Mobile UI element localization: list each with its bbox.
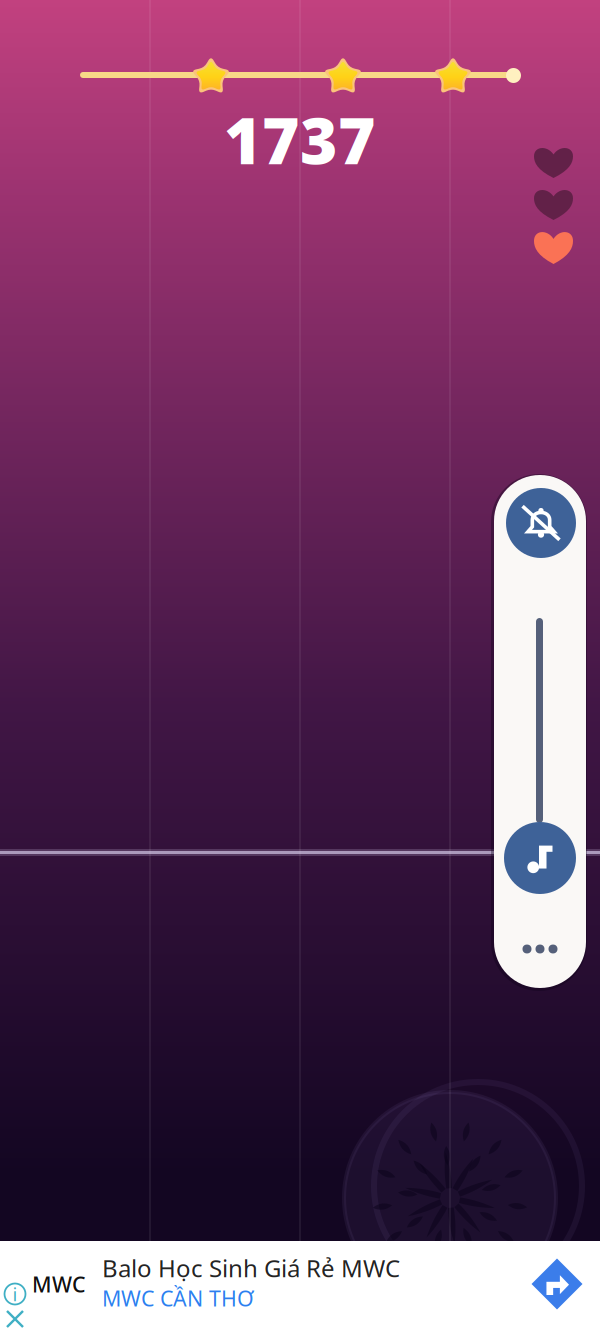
button[interactable]: Mute <box>506 488 576 558</box>
button[interactable]: MWC <box>30 1241 500 1333</box>
button[interactable]: Lane 1 <box>0 0 150 1241</box>
button[interactable]: Music volume <box>504 822 576 894</box>
staticText: 1737 <box>224 97 376 182</box>
staticText: Balo Học Sinh Giá Rẻ MWC <box>102 1252 400 1284</box>
button[interactable]: Lane 3 <box>300 0 450 1241</box>
button[interactable]: Lane 4 <box>450 0 600 1241</box>
button[interactable]: Open advertisement <box>517 1244 597 1324</box>
button[interactable]: Close ad <box>2 1306 28 1332</box>
button[interactable]: Ad information <box>2 1281 28 1307</box>
staticText: i <box>12 1282 17 1306</box>
button[interactable]: More options <box>494 925 586 973</box>
staticText: MWC <box>32 1270 86 1298</box>
staticText: MWC CẦN THƠ <box>102 1284 254 1312</box>
button[interactable]: Lane 2 <box>150 0 300 1241</box>
